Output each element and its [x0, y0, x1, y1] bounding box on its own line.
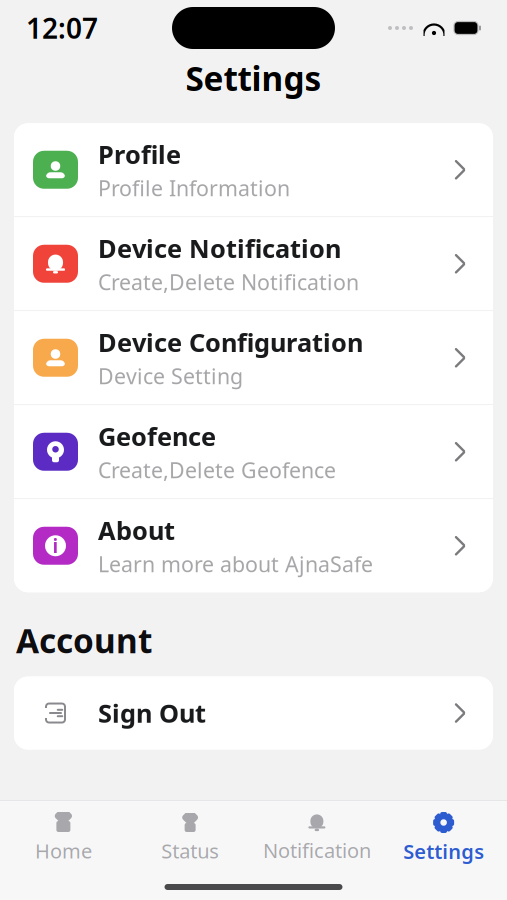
staticText: Device Setting	[98, 362, 243, 390]
staticText: 12:07	[26, 9, 98, 47]
staticText: Profile	[98, 137, 181, 171]
staticText: Profile Information	[98, 174, 290, 202]
button[interactable]: i	[14, 499, 493, 592]
staticText: Create,Delete Notification	[98, 268, 359, 296]
button[interactable]: Device Notification	[14, 217, 493, 310]
staticText: Settings	[185, 56, 321, 100]
staticText: Account	[16, 618, 152, 663]
staticText: Notification	[263, 837, 371, 864]
button[interactable]: Notification	[253, 802, 380, 872]
staticText: Device Configuration	[98, 325, 363, 359]
staticText: Status	[161, 837, 219, 864]
staticText: i	[52, 533, 58, 558]
staticText: Device Notification	[98, 231, 341, 265]
staticText: Settings	[403, 838, 484, 865]
button[interactable]: Profile	[14, 123, 493, 216]
button[interactable]: Sign Out	[14, 676, 493, 749]
staticText: Learn more about AjnaSafe	[98, 550, 373, 578]
button[interactable]: Status	[127, 801, 254, 872]
button[interactable]: Home	[0, 801, 127, 872]
staticText: Sign Out	[98, 696, 206, 730]
button[interactable]: Device Configuration	[14, 311, 493, 404]
button[interactable]: Settings	[380, 801, 507, 873]
staticText: Home	[35, 837, 92, 864]
staticText: About	[98, 513, 175, 547]
staticText: Geofence	[98, 419, 216, 453]
staticText: Create,Delete Geofence	[98, 456, 336, 484]
button[interactable]: Geofence	[14, 405, 493, 498]
